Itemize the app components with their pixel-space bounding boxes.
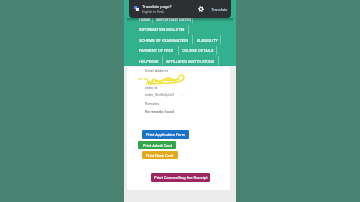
staticText: SCHEME OF EXAMINATION [139, 38, 189, 43]
staticText: No remarks found [145, 110, 174, 114]
staticText: COURSE DETAILS [182, 48, 214, 53]
button[interactable]: Print Rank Card [142, 151, 178, 159]
button[interactable]: Print Admit Card [138, 141, 176, 149]
staticText: PAYMENT OF FEES [139, 48, 174, 53]
button[interactable]: Translate settings [192, 1, 210, 17]
button[interactable]: SCHEME OF EXAMINATION [139, 35, 189, 45]
button[interactable]: ELIGIBILITY [197, 35, 218, 45]
button[interactable]: PAYMENT OF FEES [139, 45, 174, 55]
button[interactable]: Translate [207, 1, 231, 17]
staticText: Print Application Form [146, 132, 186, 137]
staticText: ELIGIBILITY [197, 38, 218, 43]
staticText: IMPORTANT DATES [156, 17, 192, 22]
staticText: Translate page? [142, 4, 172, 9]
staticText: order_XmBvEpIoH ... [145, 93, 185, 97]
staticText: English to Hindi [142, 10, 165, 14]
staticText: order id [145, 86, 158, 90]
button[interactable]: IMPORTANT DATES [156, 14, 192, 24]
staticText: Email Address [145, 69, 168, 73]
staticText: INFORMATION BULLETIN [139, 27, 185, 32]
staticText: HELPDESK [139, 59, 159, 64]
staticText: Print Counselling fee Receipt [154, 175, 208, 180]
button[interactable]: INFORMATION BULLETIN [139, 24, 185, 34]
button[interactable]: AFFILIATED INSTITUTIONS [166, 56, 215, 66]
staticText: Remarks [145, 102, 160, 106]
staticText: Print Rank Card [146, 153, 174, 158]
staticText: HOME [139, 17, 151, 22]
button[interactable]: HELPDESK [139, 56, 159, 66]
button[interactable]: Print Counselling fee Receipt [151, 173, 210, 182]
button[interactable]: Print Application Form [142, 130, 189, 139]
staticText: Print Admit Card [143, 143, 172, 148]
staticText: Translate [211, 7, 228, 12]
staticText: AFFILIATED INSTITUTIONS [166, 59, 215, 64]
button[interactable]: HOME [139, 14, 151, 24]
button[interactable]: COURSE DETAILS [182, 45, 214, 55]
